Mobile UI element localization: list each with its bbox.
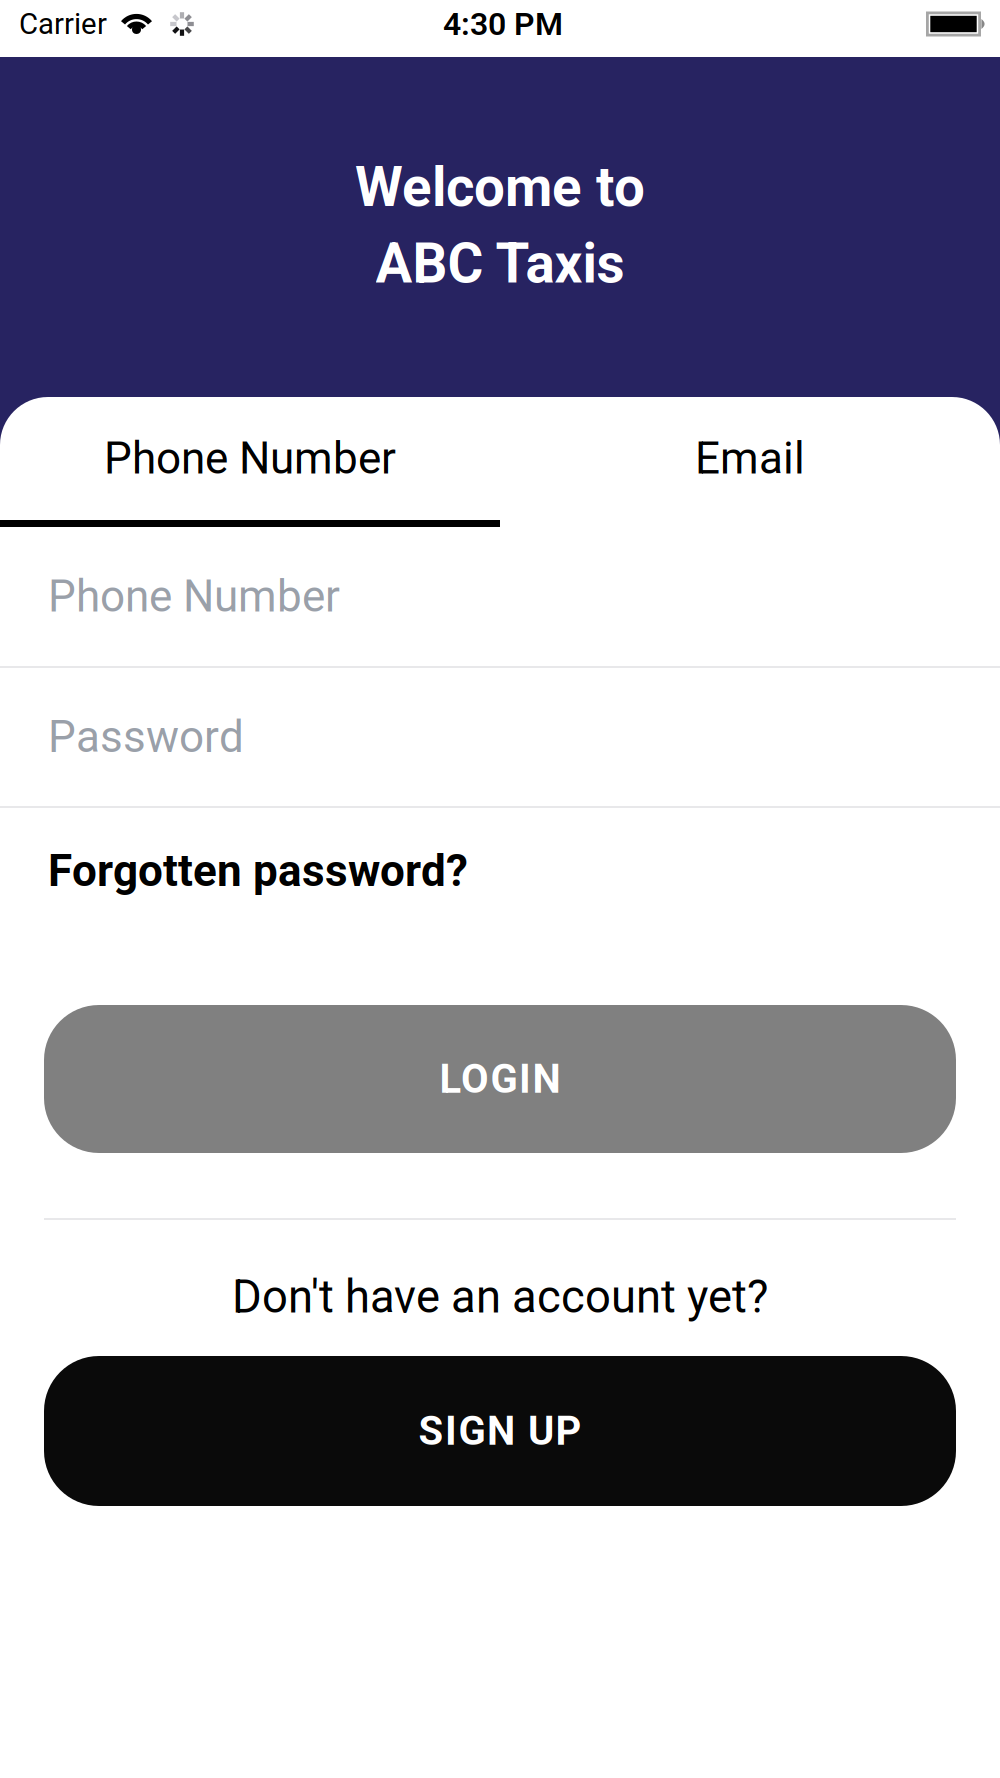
- staticText: Welcome to: [355, 156, 645, 218]
- staticText: Email: [695, 433, 805, 484]
- staticText: Phone Number: [104, 433, 396, 484]
- staticText: SIGN UP: [418, 1408, 581, 1454]
- button[interactable]: Phone Number: [0, 397, 500, 520]
- staticText: 4:30 PM: [443, 6, 563, 42]
- staticText: Forgotten password?: [48, 846, 468, 896]
- button[interactable]: Email: [500, 397, 1000, 520]
- button[interactable]: LOGIN: [44, 1005, 956, 1153]
- button[interactable]: Password: [0, 668, 1000, 806]
- staticText: Phone Number: [48, 571, 340, 622]
- staticText: Carrier: [19, 7, 107, 41]
- staticText: Password: [48, 712, 244, 762]
- staticText: Don't have an account yet?: [232, 1271, 768, 1323]
- button[interactable]: Phone Number: [0, 527, 1000, 666]
- staticText: ABC Taxis: [375, 232, 624, 295]
- button[interactable]: SIGN UP: [44, 1356, 956, 1506]
- button[interactable]: Forgotten password?: [0, 808, 1000, 934]
- staticText: LOGIN: [439, 1056, 560, 1102]
